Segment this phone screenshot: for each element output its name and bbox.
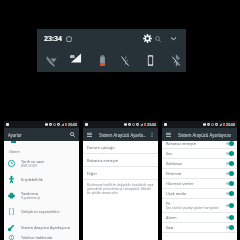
button[interactable]: More options [147, 130, 156, 139]
button[interactable]: Diğer [83, 167, 158, 179]
button[interactable]: Flashlight [116, 48, 134, 72]
button[interactable]: Settings [142, 33, 153, 44]
staticText: Sistem [9, 149, 20, 154]
button[interactable]: Ethernet [225, 169, 234, 178]
button[interactable]: Kablosuz [162, 159, 237, 168]
button[interactable]: Saat [225, 223, 234, 232]
button[interactable]: Durum çubuğu [83, 141, 158, 153]
staticText: 0 yazdırma işi [21, 196, 41, 200]
staticText: Bu deneysel özellikler değişebilir, bozu… [87, 183, 154, 195]
staticText: GMT+03:00 [21, 164, 37, 168]
staticText: Telefon hakkında [21, 235, 53, 240]
button[interactable]: Hücresel veriler [225, 179, 234, 188]
staticText: Rahatsız etmeyin [166, 141, 197, 146]
button[interactable]: Hücresel veriler [162, 179, 237, 188]
button[interactable]: Ses [225, 149, 234, 158]
button[interactable]: Erişilebilirlik [4, 171, 79, 187]
staticText: 4G [70, 54, 75, 59]
staticText: Ethernet [166, 171, 182, 176]
staticText: Yazdırma [21, 191, 38, 196]
button[interactable]: Battery saver [93, 48, 111, 72]
button[interactable]: Uçak modu [225, 189, 234, 198]
button[interactable]: Ethernet [162, 169, 237, 178]
button[interactable]: Yazdırma [4, 187, 79, 203]
staticText: Diğer [87, 171, 98, 176]
staticText: Sistem Arayüzü Ayarlayıcısı [21, 225, 71, 230]
button[interactable]: Kablosuz [225, 159, 234, 168]
button[interactable]: Rahatsız etmeyin [162, 141, 237, 148]
button[interactable]: Alarm [162, 213, 237, 222]
button[interactable]: Auto rotate [141, 48, 159, 72]
button[interactable]: Pil [162, 199, 237, 212]
staticText: Kablosuz [166, 161, 183, 166]
staticText: 23:34 [44, 34, 62, 44]
staticText: Alarm [166, 215, 177, 220]
staticText: Uçak modu [166, 191, 187, 196]
staticText: Pil [166, 201, 171, 206]
button[interactable]: Tarih ve saat [4, 155, 79, 171]
button[interactable]: Wi-Fi [42, 48, 60, 72]
button[interactable]: Expand [168, 33, 179, 44]
staticText: Hücresel veriler [166, 181, 194, 186]
staticText: Saat [166, 225, 174, 230]
button[interactable]: Mobile data [70, 52, 82, 64]
staticText: Sistem Arayüzü Ayarlayıcısı [178, 132, 235, 138]
button[interactable]: Alarm [225, 213, 234, 222]
staticText: Sistem Arayüzü Ayarlayı... [99, 132, 147, 138]
staticText: 23:34 [147, 122, 156, 127]
button[interactable]: Open navigation menu [85, 130, 94, 139]
staticText: Tarih ve saat [21, 159, 44, 164]
staticText: Ayarlar [8, 132, 68, 138]
staticText: Şarj olurken yüzdeyi göster (varsayılan) [166, 206, 219, 210]
staticText: Geliştirici seçenekleri [21, 209, 60, 214]
button[interactable]: Rahatsız etmeyin [83, 154, 158, 166]
staticText: Erişilebilirlik [21, 177, 43, 182]
button[interactable]: Pil [225, 201, 234, 210]
button[interactable]: Rahatsız etmeyin [225, 141, 234, 148]
staticText: Rahatsız etmeyin [87, 158, 119, 163]
button[interactable]: Open navigation menu [164, 130, 173, 139]
staticText: Ses [166, 151, 173, 156]
button[interactable]: Uçak modu [162, 189, 237, 198]
button[interactable]: Telefon hakkında [4, 235, 79, 240]
button[interactable]: Search [153, 34, 163, 44]
staticText: 23:34 [68, 122, 77, 127]
button[interactable]: Search [68, 130, 77, 139]
button[interactable]: Bluetooth [167, 48, 185, 72]
button[interactable]: Geliştirici seçenekleri [4, 203, 79, 219]
button[interactable]: Ses [162, 149, 237, 158]
staticText: 23:34 [226, 122, 235, 127]
button[interactable]: Saat [162, 223, 237, 232]
button[interactable]: Sistem Arayüzü Ayarlayıcısı [4, 219, 79, 235]
staticText: Durum çubuğu [87, 145, 115, 150]
